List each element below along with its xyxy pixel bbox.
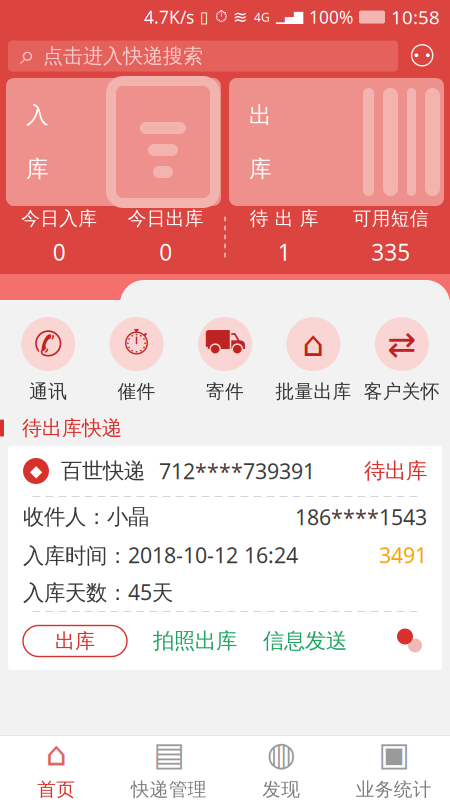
staticText: 发现 — [262, 778, 300, 800]
staticText: 今日出库 — [128, 207, 204, 230]
staticText: 待出库 — [364, 458, 427, 484]
staticText: 1 — [278, 237, 291, 267]
button[interactable]: 入 — [6, 78, 221, 206]
button[interactable]: ⛟ — [181, 317, 269, 403]
button[interactable]: ⌂ — [0, 735, 112, 800]
staticText: 出 — [249, 101, 272, 129]
staticText: 寄件 — [206, 380, 244, 403]
staticText: 335 — [371, 237, 410, 267]
button[interactable]: ⌕ — [8, 40, 398, 71]
staticText: ◍ — [267, 735, 296, 773]
staticText: ⏱ — [215, 9, 227, 25]
staticText: ▣ — [378, 735, 409, 773]
staticText: ⌕ — [20, 43, 35, 69]
staticText: ⚇ — [408, 39, 435, 73]
staticText: ◆ — [30, 462, 42, 480]
staticText: 今日入库 — [21, 207, 97, 230]
staticText: 业务统计 — [356, 778, 432, 800]
staticText: 入库天数：45天 — [23, 578, 173, 606]
staticText: 待 出 库 — [250, 207, 319, 230]
staticText: ⛟ — [203, 327, 247, 361]
staticText: 入库时间：2018-10-12 16:24 — [23, 541, 298, 569]
button[interactable]: 个人中心 — [402, 39, 442, 73]
button[interactable]: ◆ — [0, 446, 450, 670]
staticText: 客户关怀 — [364, 380, 440, 403]
staticText: ✆ — [34, 324, 63, 364]
staticText: 收件人：小晶 — [23, 504, 149, 530]
button[interactable]: ◍ — [225, 735, 337, 800]
staticText: ▤ — [153, 735, 184, 773]
staticText: 点击进入快递搜索 — [43, 44, 203, 68]
staticText: 入 — [26, 101, 49, 129]
button[interactable]: ▣ — [337, 735, 450, 800]
staticText: 批量出库 — [275, 380, 351, 403]
staticText: 首页 — [37, 778, 75, 800]
button[interactable]: ⌂ — [269, 317, 358, 403]
button[interactable]: ⇄ — [358, 317, 446, 403]
button[interactable]: 出库 — [23, 625, 127, 656]
staticText: 库 — [26, 155, 49, 183]
staticText: ⇄ — [387, 324, 416, 364]
staticText: 3491 — [379, 541, 427, 569]
button[interactable]: 微信 — [393, 626, 427, 656]
staticText: 4.7K/s — [144, 5, 194, 28]
staticText: ⌂ — [46, 735, 67, 773]
staticText: 100% — [309, 5, 353, 28]
staticText: 10:58 — [391, 5, 440, 29]
button[interactable]: ✆ — [4, 317, 92, 403]
staticText: 待出库快递 — [22, 416, 122, 440]
staticText: ≋ — [233, 7, 248, 27]
staticText: 库 — [249, 155, 272, 183]
button[interactable]: ⏱ — [92, 317, 181, 403]
staticText: 快递管理 — [131, 778, 207, 800]
staticText: 0 — [159, 237, 172, 267]
staticText: ⏱ — [123, 327, 150, 361]
staticText: ▯ — [200, 8, 209, 26]
staticText: 186****1543 — [295, 503, 427, 531]
button[interactable]: 出 — [229, 78, 444, 206]
staticText: 712****739391 — [159, 457, 315, 485]
staticText: 通讯 — [29, 380, 67, 403]
staticText: 4G — [254, 9, 270, 25]
button[interactable]: 信息发送 — [253, 625, 357, 657]
staticText: 拍照出库 — [153, 628, 237, 654]
staticText: 出库 — [55, 629, 95, 653]
staticText: 百世快递 — [61, 458, 145, 484]
button[interactable]: 拍照出库 — [143, 625, 247, 657]
staticText: 可用短信 — [353, 207, 429, 230]
staticText: 信息发送 — [263, 628, 347, 654]
staticText: 催件 — [118, 380, 156, 403]
button[interactable]: ▤ — [112, 735, 225, 800]
staticText: ▁▄▇ — [276, 10, 303, 24]
staticText: ⌂ — [302, 324, 324, 364]
staticText: 0 — [53, 237, 66, 267]
